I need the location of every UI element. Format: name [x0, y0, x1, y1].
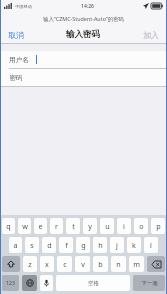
button[interactable]: a — [9, 237, 22, 253]
button[interactable]: k — [127, 237, 141, 253]
button[interactable]: i — [117, 218, 131, 234]
staticText: s — [30, 240, 34, 250]
staticText: 123 — [6, 280, 15, 287]
staticText: f — [65, 240, 68, 250]
button[interactable]: r — [50, 218, 63, 234]
button[interactable]: 加入 — [142, 29, 160, 41]
staticText: q — [6, 221, 11, 231]
staticText: y — [88, 221, 92, 231]
staticText: 14:26 — [81, 3, 94, 10]
staticText: o — [139, 221, 144, 231]
button[interactable]: q — [2, 218, 15, 234]
staticText: v — [81, 259, 85, 269]
staticText: m — [133, 259, 140, 269]
staticText: d — [47, 240, 52, 250]
button[interactable]: o — [134, 218, 148, 234]
staticText: g — [81, 240, 86, 250]
button[interactable]: j — [110, 237, 124, 253]
button[interactable]: g — [76, 237, 90, 253]
button[interactable]: s — [25, 237, 39, 253]
staticText: 中国移动 — [15, 4, 32, 9]
staticText: 输入密码 — [66, 29, 100, 40]
staticText: l — [150, 240, 152, 250]
button[interactable]: f — [59, 237, 73, 253]
staticText: 下一项 — [141, 280, 158, 287]
staticText: b — [98, 259, 103, 269]
staticText: c — [63, 259, 67, 269]
staticText: a — [13, 240, 18, 250]
staticText: h — [98, 240, 103, 250]
button[interactable]: b — [93, 256, 108, 272]
button[interactable]: Shift — [2, 256, 20, 272]
button[interactable]: c — [57, 256, 72, 272]
staticText: k — [132, 240, 136, 250]
button[interactable]: l — [144, 237, 158, 253]
button[interactable]: d — [42, 237, 56, 253]
staticText: 空格 — [88, 280, 99, 287]
staticText: j — [116, 240, 118, 250]
staticText: 密码 — [9, 74, 23, 82]
button[interactable]: v — [75, 256, 90, 272]
button[interactable]: 用户名 — [0, 51, 167, 68]
button[interactable]: 密码 — [0, 69, 167, 86]
button[interactable]: p — [151, 218, 165, 234]
button[interactable]: t — [66, 218, 80, 234]
staticText: p — [156, 221, 161, 231]
staticText: 输入“CZMC-Student-Auto”的密码 — [43, 15, 124, 22]
button[interactable]: w — [18, 218, 31, 234]
staticText: 加入 — [143, 30, 159, 40]
staticText: t — [72, 221, 75, 231]
button[interactable]: Backspace — [147, 256, 165, 272]
staticText: 取消 — [8, 30, 24, 40]
staticText: r — [55, 221, 58, 231]
button[interactable]: h — [93, 237, 107, 253]
staticText: u — [105, 221, 110, 231]
button[interactable]: e — [34, 218, 47, 234]
button[interactable]: m — [129, 256, 144, 272]
button[interactable]: n — [111, 256, 126, 272]
button[interactable]: 123 — [2, 275, 19, 291]
button[interactable]: z — [23, 256, 37, 272]
staticText: e — [38, 221, 43, 231]
staticText: i — [123, 221, 125, 231]
button[interactable]: 空格 — [56, 275, 130, 291]
button[interactable]: 取消 — [7, 29, 25, 41]
staticText: 用户名 — [9, 56, 29, 64]
staticText: n — [116, 259, 121, 269]
staticText: x — [45, 259, 49, 269]
button[interactable]: Change keyboard — [22, 275, 37, 291]
staticText: z — [28, 259, 32, 269]
button[interactable]: u — [100, 218, 114, 234]
staticText: w — [22, 221, 28, 231]
button[interactable]: Dictation — [40, 275, 53, 291]
button[interactable]: 下一项 — [133, 275, 165, 291]
button[interactable]: y — [83, 218, 97, 234]
button[interactable]: x — [40, 256, 54, 272]
